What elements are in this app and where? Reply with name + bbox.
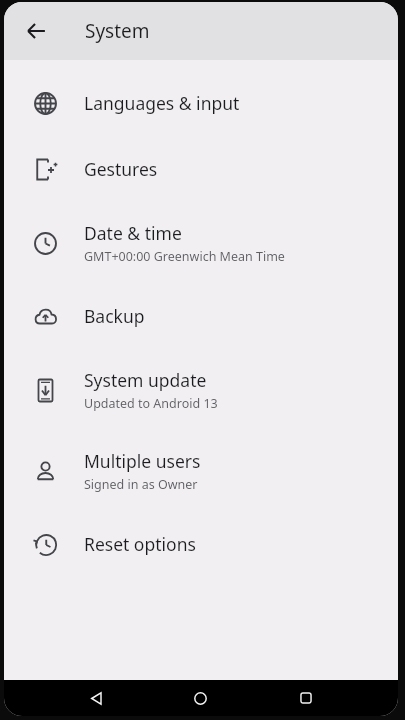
staticText: Signed in as Owner	[84, 476, 198, 493]
staticText: Date & time	[84, 221, 182, 245]
staticText: System update	[84, 368, 207, 392]
button[interactable]: Multiple users	[4, 430, 398, 511]
button[interactable]: Home	[148, 680, 253, 716]
staticText: Languages & input	[84, 91, 240, 115]
button[interactable]: Recent apps	[253, 680, 358, 716]
staticText: Gestures	[84, 157, 158, 181]
button[interactable]: Gestures	[4, 136, 398, 202]
button[interactable]: System update	[4, 349, 398, 430]
staticText: Multiple users	[84, 449, 201, 473]
button[interactable]: Reset options	[4, 511, 398, 577]
button[interactable]: Back	[44, 680, 148, 716]
staticText: System	[85, 18, 150, 44]
staticText: GMT+00:00 Greenwich Mean Time	[84, 248, 285, 265]
button[interactable]: Date & time	[4, 202, 398, 283]
staticText: Backup	[84, 304, 145, 328]
staticText: Reset options	[84, 532, 196, 556]
button[interactable]: Back	[14, 9, 58, 53]
button[interactable]: Backup	[4, 283, 398, 349]
button[interactable]: Languages & input	[4, 70, 398, 136]
staticText: Updated to Android 13	[84, 395, 218, 412]
